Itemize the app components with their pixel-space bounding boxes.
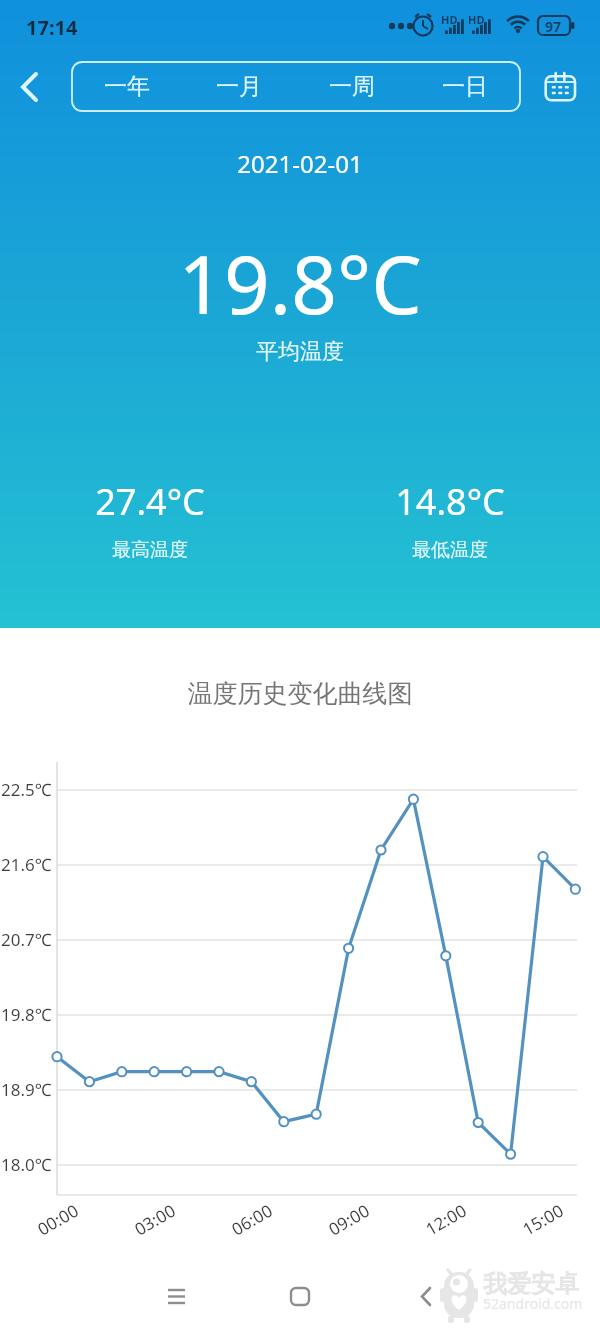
staticText: 一周 [329, 72, 375, 101]
staticText: 14.8°C [300, 477, 600, 526]
button[interactable]: Calendar [536, 68, 584, 116]
staticText: 19.8°C [0, 228, 600, 337]
staticText: 00:00 [33, 1198, 83, 1240]
staticText: 27.4°C [0, 477, 300, 526]
staticText: 17:14 [26, 14, 78, 41]
staticText: 18.0℃ [1, 1153, 52, 1176]
button[interactable]: 一月 [183, 61, 295, 112]
staticText: 12:00 [421, 1198, 471, 1240]
staticText: 22.5℃ [1, 778, 52, 801]
staticText: 19.8℃ [1, 1003, 52, 1026]
staticText: 我爱安卓 [483, 1269, 579, 1299]
staticText: 06:00 [227, 1198, 277, 1240]
staticText: 2021-02-01 [0, 147, 600, 180]
staticText: 18.9℃ [1, 1078, 52, 1101]
button[interactable]: 一年 [71, 61, 183, 112]
button[interactable]: Back [4, 62, 52, 110]
staticText: 20.7℃ [1, 928, 52, 951]
staticText: 一月 [216, 72, 262, 101]
staticText: 温度历史变化曲线图 [0, 678, 600, 709]
staticText: 52android.com [483, 1294, 583, 1313]
button[interactable]: Recents [152, 1272, 202, 1322]
button[interactable]: 一周 [295, 61, 408, 112]
staticText: 一日 [442, 72, 488, 101]
staticText: 最高温度 [0, 538, 300, 562]
staticText: 15:00 [518, 1198, 568, 1240]
button[interactable]: Back [400, 1272, 450, 1322]
staticText: 09:00 [324, 1198, 374, 1240]
staticText: HD [441, 12, 458, 27]
staticText: 最低温度 [300, 538, 600, 562]
staticText: 一年 [104, 72, 150, 101]
button[interactable]: 一日 [408, 61, 521, 112]
staticText: 平均温度 [0, 338, 600, 366]
staticText: 03:00 [130, 1198, 180, 1240]
button[interactable]: Home [275, 1272, 325, 1322]
staticText: 97 [545, 17, 562, 36]
staticText: HD [468, 12, 485, 27]
staticText: 21.6℃ [1, 853, 52, 876]
